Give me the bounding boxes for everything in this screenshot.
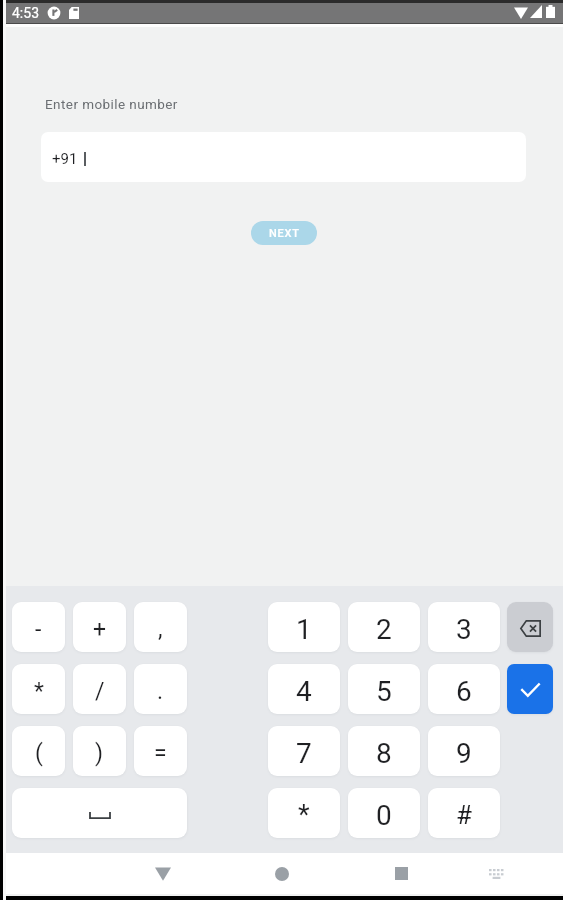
button[interactable]: / [73,664,126,714]
button[interactable]: 1 [268,602,340,652]
staticText: # [456,800,473,830]
staticText: 3 [456,613,472,646]
button[interactable]: = [134,726,187,776]
button[interactable]: 5 [348,664,420,714]
staticText: +91 [52,150,78,168]
button[interactable]: Recents [379,853,423,894]
staticText: 1 [296,613,312,646]
button[interactable]: NEXT [251,221,317,245]
staticText: 8 [376,737,392,770]
staticText: 0 [376,799,392,832]
staticText: 7 [296,737,312,770]
button[interactable]: Enter [507,664,553,714]
button[interactable]: 4 [268,664,340,714]
staticText: * [34,678,44,705]
button[interactable]: , [134,602,187,652]
staticText: / [95,678,105,705]
staticText: 2 [376,613,392,646]
button[interactable]: - [12,602,65,652]
button[interactable]: . [134,664,187,714]
staticText: ) [95,740,104,767]
staticText: + [93,616,107,643]
button[interactable]: * [12,664,65,714]
button[interactable]: + [73,602,126,652]
button[interactable]: Space [12,788,187,838]
button[interactable]: # [428,788,500,838]
button[interactable]: 2 [348,602,420,652]
staticText: 9 [456,737,472,770]
button[interactable]: * [268,788,340,838]
staticText: , [158,616,163,643]
button[interactable]: 8 [348,726,420,776]
button[interactable]: 0 [348,788,420,838]
button[interactable]: 6 [428,664,500,714]
staticText: ( [35,740,43,767]
staticText: 4 [296,675,312,708]
staticText: Enter mobile number [45,96,178,112]
button[interactable]: Change keyboard [474,853,518,894]
staticText: * [298,799,310,831]
staticText: 4:53 [12,5,39,21]
staticText: = [154,740,167,767]
staticText: . [157,678,164,705]
staticText: NEXT [269,227,300,240]
staticText: 6 [456,675,472,708]
staticText: - [35,616,42,643]
button[interactable]: ) [73,726,126,776]
button[interactable]: 7 [268,726,340,776]
button[interactable]: +91 [41,132,526,182]
button[interactable]: 3 [428,602,500,652]
button[interactable]: Back [141,853,185,894]
button[interactable]: ( [12,726,65,776]
button[interactable]: Backspace [507,602,553,652]
staticText: 5 [376,675,392,708]
button[interactable]: 9 [428,726,500,776]
button[interactable]: Home [260,853,304,894]
